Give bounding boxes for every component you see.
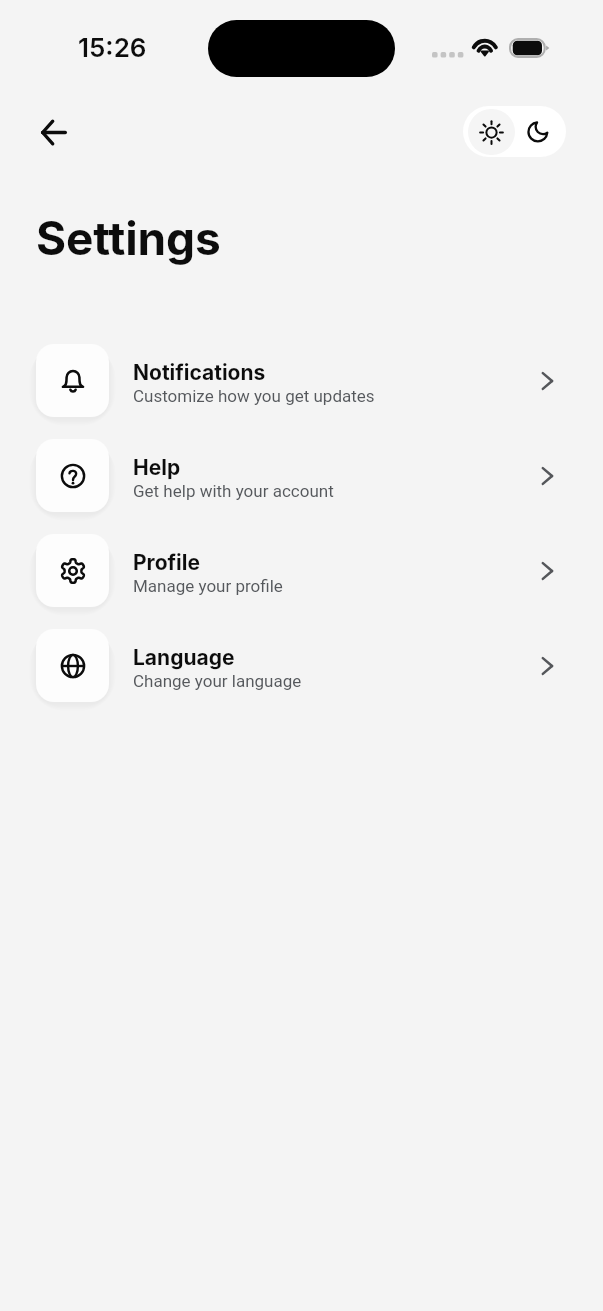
button[interactable]: Help <box>0 439 603 512</box>
staticText: Help <box>133 455 181 480</box>
staticText: Get help with your account <box>133 481 334 501</box>
button[interactable]: Back <box>27 106 79 158</box>
staticText: Manage your profile <box>133 576 283 596</box>
staticText: Notifications <box>133 360 266 385</box>
button[interactable]: Light theme <box>468 109 515 155</box>
staticText: Customize how you get updates <box>133 386 375 406</box>
staticText: Change your language <box>133 671 302 691</box>
staticText: Settings <box>36 210 221 266</box>
staticText: 15:26 <box>78 32 147 63</box>
button[interactable]: Language <box>0 629 603 702</box>
staticText: Profile <box>133 550 200 575</box>
button[interactable]: Profile <box>0 534 603 607</box>
staticText: Language <box>133 645 235 670</box>
button[interactable]: Notifications <box>0 344 603 417</box>
button[interactable]: Dark theme <box>514 109 561 155</box>
